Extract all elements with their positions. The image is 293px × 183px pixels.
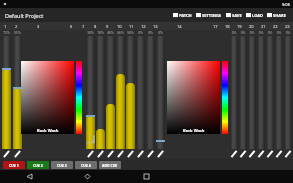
staticText: 0% — [239, 31, 247, 35]
button[interactable]: CUE 3 — [51, 161, 73, 169]
staticText: LOAD — [252, 13, 263, 18]
button[interactable]: Colour field — [167, 61, 220, 134]
staticText: 0% — [284, 31, 292, 35]
staticText: Back Wash — [183, 128, 205, 133]
staticText: SHARE — [273, 13, 286, 18]
staticText: 30% — [86, 31, 95, 35]
staticText: SETTINGS — [202, 13, 222, 18]
button[interactable]: CUE 1 — [3, 161, 25, 169]
staticText: 1 — [4, 24, 7, 29]
staticText: 0% — [266, 31, 274, 35]
staticText: 0% — [257, 31, 265, 35]
staticText: 17 — [213, 24, 218, 29]
staticText: PATCH — [179, 13, 192, 18]
staticText: 13 — [153, 24, 158, 29]
staticText: 0% — [248, 31, 256, 35]
staticText: SAVE — [232, 13, 242, 18]
staticText: 2 — [15, 24, 18, 29]
button[interactable]: Hue — [76, 61, 82, 134]
button[interactable]: CUE 4 — [75, 161, 97, 169]
button[interactable] — [156, 36, 165, 149]
staticText: 6 — [70, 24, 73, 29]
staticText: ADD CUE — [102, 163, 118, 168]
staticText: 20 — [249, 24, 254, 29]
staticText: 23 — [285, 24, 290, 29]
staticText: 21 — [261, 24, 266, 29]
staticText: 40% — [106, 31, 115, 35]
button[interactable]: Home — [58, 170, 117, 183]
staticText: 72% — [2, 31, 11, 35]
staticText: 14 — [177, 24, 182, 29]
button[interactable]: Hue — [222, 61, 228, 134]
button[interactable] — [266, 36, 274, 149]
button[interactable] — [284, 36, 292, 149]
button[interactable]: SHARE — [265, 11, 288, 20]
button[interactable]: Back — [0, 170, 58, 183]
staticText: 66% — [116, 31, 125, 35]
staticText: CUE 2 — [33, 163, 43, 168]
button[interactable]: Recents — [117, 170, 176, 183]
button[interactable] — [126, 36, 135, 149]
button[interactable] — [275, 36, 283, 149]
staticText: 0% — [230, 31, 238, 35]
staticText: 18% — [96, 31, 105, 35]
staticText: 8 — [94, 24, 97, 29]
button[interactable] — [136, 36, 145, 149]
button[interactable]: LOAD — [244, 11, 265, 20]
button[interactable]: CUE 2 — [27, 161, 49, 169]
staticText: 12 — [141, 24, 146, 29]
staticText: 9:06 — [282, 2, 290, 7]
button[interactable]: ADD CUE — [99, 161, 121, 169]
button[interactable] — [239, 36, 247, 149]
staticText: 18 — [225, 24, 230, 29]
button[interactable] — [230, 36, 238, 149]
button[interactable] — [248, 36, 256, 149]
staticText: 55% — [13, 31, 22, 35]
staticText: CUE 1 — [9, 163, 19, 168]
staticText: Default Project — [5, 12, 44, 19]
staticText: CUE 4 — [81, 163, 91, 168]
staticText: 10 — [117, 24, 122, 29]
button[interactable]: SAVE — [224, 11, 244, 20]
staticText: 0% — [275, 31, 283, 35]
staticText: 0% — [156, 31, 165, 35]
staticText: Back Wash — [86, 134, 95, 143]
staticText: CUE 3 — [57, 163, 67, 168]
staticText: 0% — [146, 31, 155, 35]
button[interactable] — [106, 36, 115, 149]
button[interactable] — [96, 36, 105, 149]
staticText: 19 — [237, 24, 242, 29]
staticText: 9 — [106, 24, 109, 29]
button[interactable]: PATCH — [171, 11, 194, 20]
button[interactable]: Back Wash — [86, 36, 95, 149]
staticText: 22 — [273, 24, 278, 29]
button[interactable]: Colour field — [21, 61, 74, 134]
button[interactable] — [257, 36, 265, 149]
staticText: 0% — [136, 31, 145, 35]
staticText: 7 — [82, 24, 85, 29]
staticText: Back Wash — [37, 128, 59, 133]
staticText: 11 — [129, 24, 134, 29]
staticText: 3 — [37, 24, 40, 29]
button[interactable] — [13, 36, 22, 149]
button[interactable] — [146, 36, 155, 149]
button[interactable] — [2, 36, 11, 149]
button[interactable]: SETTINGS — [194, 11, 224, 20]
staticText: 58% — [126, 31, 135, 35]
button[interactable] — [116, 36, 125, 149]
